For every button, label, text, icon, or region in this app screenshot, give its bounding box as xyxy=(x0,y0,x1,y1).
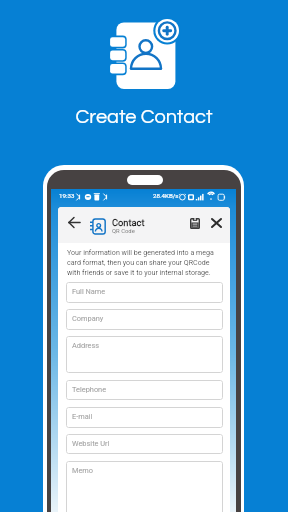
staticText: 19:33 xyxy=(59,192,75,199)
staticText: Company xyxy=(72,314,104,323)
button[interactable]: Telephone xyxy=(66,380,223,400)
staticText: Website Url xyxy=(72,439,110,448)
staticText: Memo xyxy=(72,466,94,475)
staticText: QR Code xyxy=(112,228,135,235)
staticText: Your information will be generated into … xyxy=(67,248,214,276)
button[interactable]: Save xyxy=(186,214,204,232)
button[interactable]: E-mail xyxy=(66,407,223,428)
button[interactable]: Close xyxy=(207,214,225,232)
button[interactable]: Website Url xyxy=(66,434,223,454)
button[interactable]: Company xyxy=(66,309,223,330)
button[interactable]: Memo xyxy=(66,461,223,512)
staticText: Telephone xyxy=(72,385,107,394)
staticText: Contact xyxy=(112,217,145,228)
staticText: Create Contact xyxy=(0,107,288,128)
staticText: E-mail xyxy=(72,412,93,421)
button[interactable]: Back xyxy=(65,213,84,232)
staticText: Address xyxy=(72,341,100,350)
button[interactable]: Address xyxy=(66,336,223,373)
staticText: 28.4KB/s xyxy=(153,192,179,199)
staticText: Full Name xyxy=(72,287,106,296)
button[interactable]: Full Name xyxy=(66,282,223,303)
